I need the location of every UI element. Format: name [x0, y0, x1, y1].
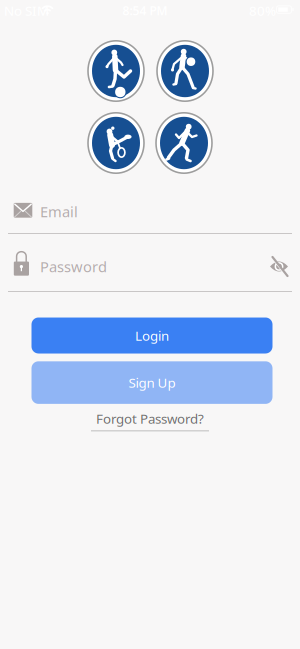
button[interactable]: Sign Up — [31, 361, 272, 404]
staticText: Sign Up — [128, 374, 175, 391]
staticText: Login — [135, 327, 169, 344]
button[interactable]: Forgot Password? — [91, 410, 209, 431]
staticText: Forgot Password? — [96, 410, 204, 427]
button[interactable]: Login — [31, 317, 272, 353]
staticText: Email — [40, 202, 78, 221]
button[interactable] — [266, 253, 292, 279]
staticText: Password — [40, 257, 107, 276]
